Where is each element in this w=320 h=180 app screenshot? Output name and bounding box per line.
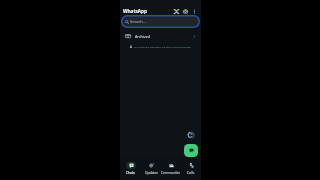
button[interactable]: Chats (120, 158, 141, 177)
button[interactable]: Search... (121, 15, 200, 28)
staticText: Chats (126, 170, 135, 174)
staticText: Updates (145, 170, 158, 174)
button[interactable]: Meta AI (172, 7, 181, 16)
staticText: Your personal messages are end-to-end en… (133, 45, 191, 48)
button[interactable]: Camera (181, 7, 190, 16)
button[interactable]: Meta AI (186, 130, 196, 140)
staticText: WhatsApp (123, 8, 147, 14)
staticText: Calls (187, 170, 195, 174)
button[interactable]: Updates (141, 158, 161, 177)
staticText: Search... (130, 19, 146, 24)
button[interactable]: New chat (184, 144, 198, 157)
button[interactable]: More options (190, 7, 199, 16)
button[interactable]: Calls (181, 158, 201, 177)
button[interactable]: Communities (161, 158, 181, 177)
button[interactable]: Archived (120, 31, 201, 41)
staticText: Communities (161, 170, 181, 174)
staticText: Archived (135, 34, 151, 39)
